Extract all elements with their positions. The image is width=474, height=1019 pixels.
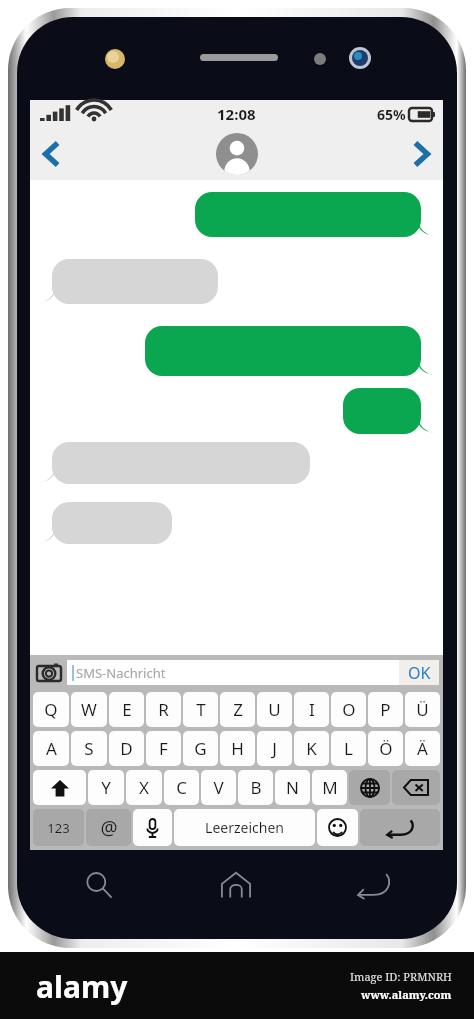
button[interactable]: Message bubble (343, 388, 435, 434)
other: Language (349, 770, 390, 805)
button[interactable]: Key (133, 809, 172, 846)
staticText: G (194, 737, 207, 760)
button[interactable]: O (331, 692, 366, 727)
staticText: I (309, 698, 315, 721)
button[interactable]: Q (33, 692, 69, 727)
staticText: alamy (36, 966, 128, 1007)
button[interactable]: SMS-Nachricht (67, 660, 399, 685)
button[interactable]: Message bubble (145, 326, 435, 376)
button[interactable]: Message bubble (38, 502, 172, 544)
button[interactable]: P (368, 692, 403, 727)
staticText: OK (408, 662, 431, 684)
button[interactable]: Y (88, 770, 124, 805)
button[interactable]: Ö (368, 731, 403, 766)
staticText: W (81, 698, 97, 721)
button[interactable]: W (71, 692, 107, 727)
button[interactable]: T (183, 692, 218, 727)
button[interactable]: OK (399, 660, 439, 685)
staticText: T (196, 698, 206, 721)
button[interactable]: @ (86, 809, 131, 846)
button[interactable]: Back (305, 855, 443, 915)
staticText: Leerzeichen (205, 818, 284, 837)
button[interactable]: B (238, 770, 273, 805)
button[interactable]: U (257, 692, 292, 727)
staticText: 65% (377, 105, 406, 124)
staticText: Y (101, 776, 111, 799)
staticText: @ (100, 815, 118, 841)
button[interactable]: I (294, 692, 329, 727)
button[interactable]: Back (30, 132, 74, 176)
button[interactable]: M (312, 770, 347, 805)
button[interactable]: X (126, 770, 162, 805)
button[interactable]: N (275, 770, 310, 805)
staticText: M (322, 776, 338, 799)
button[interactable]: Contact avatar (216, 133, 258, 175)
button[interactable]: Leerzeichen (174, 809, 315, 846)
other: Enter (360, 809, 440, 846)
staticText: K (306, 737, 317, 760)
button[interactable]: Z (220, 692, 255, 727)
staticText: C (176, 776, 187, 799)
button[interactable]: Message bubble (38, 442, 310, 484)
staticText: Z (233, 698, 243, 721)
button[interactable]: Ü (405, 692, 440, 727)
staticText: L (344, 737, 353, 760)
button[interactable]: S (71, 731, 107, 766)
button[interactable]: 123 (33, 809, 84, 846)
button[interactable]: K (294, 731, 329, 766)
button[interactable]: Home (167, 855, 305, 915)
button[interactable]: Forward (399, 132, 443, 176)
staticText: N (286, 776, 299, 799)
button[interactable]: Camera (34, 659, 64, 685)
staticText: H (231, 737, 244, 760)
button[interactable]: Message bubble (38, 259, 218, 304)
button[interactable]: E (109, 692, 144, 727)
staticText: O (342, 698, 356, 721)
staticText: F (159, 737, 168, 760)
button[interactable]: A (33, 731, 69, 766)
staticText: S (84, 737, 94, 760)
button[interactable]: Key (33, 770, 86, 805)
staticText: Q (44, 698, 58, 721)
button[interactable]: G (183, 731, 218, 766)
staticText: 12:08 (217, 104, 256, 124)
button[interactable]: Key (317, 809, 358, 846)
button[interactable]: Key (349, 770, 390, 805)
staticText: U (268, 698, 281, 721)
staticText: A (46, 737, 57, 760)
button[interactable]: J (257, 731, 292, 766)
button[interactable]: Key (360, 809, 440, 846)
staticText: J (272, 737, 277, 760)
staticText: Ü (416, 698, 429, 721)
staticText: V (213, 776, 224, 799)
button[interactable]: Search (30, 855, 167, 915)
button[interactable]: L (331, 731, 366, 766)
staticText: 123 (47, 819, 70, 837)
button[interactable]: R (146, 692, 181, 727)
staticText: R (158, 698, 169, 721)
button[interactable]: Ä (405, 731, 440, 766)
other: Backspace (392, 770, 440, 805)
staticText: www.alamy.com (361, 987, 452, 1002)
staticText: B (250, 776, 262, 799)
staticText: X (139, 776, 149, 799)
button[interactable]: V (201, 770, 236, 805)
other: Emoji (317, 809, 358, 846)
staticText: Image ID: PRMNRH (350, 969, 452, 984)
button[interactable]: H (220, 731, 255, 766)
other: Voice input (133, 809, 172, 846)
button[interactable]: D (109, 731, 144, 766)
button[interactable]: C (164, 770, 199, 805)
staticText: SMS-Nachricht (76, 664, 166, 682)
staticText: P (380, 698, 391, 721)
staticText: Ä (417, 737, 428, 760)
button[interactable]: Message bubble (195, 192, 435, 237)
button[interactable]: Key (392, 770, 440, 805)
staticText: D (120, 737, 133, 760)
staticText: E (122, 698, 132, 721)
staticText: Ö (379, 737, 393, 760)
button[interactable]: F (146, 731, 181, 766)
